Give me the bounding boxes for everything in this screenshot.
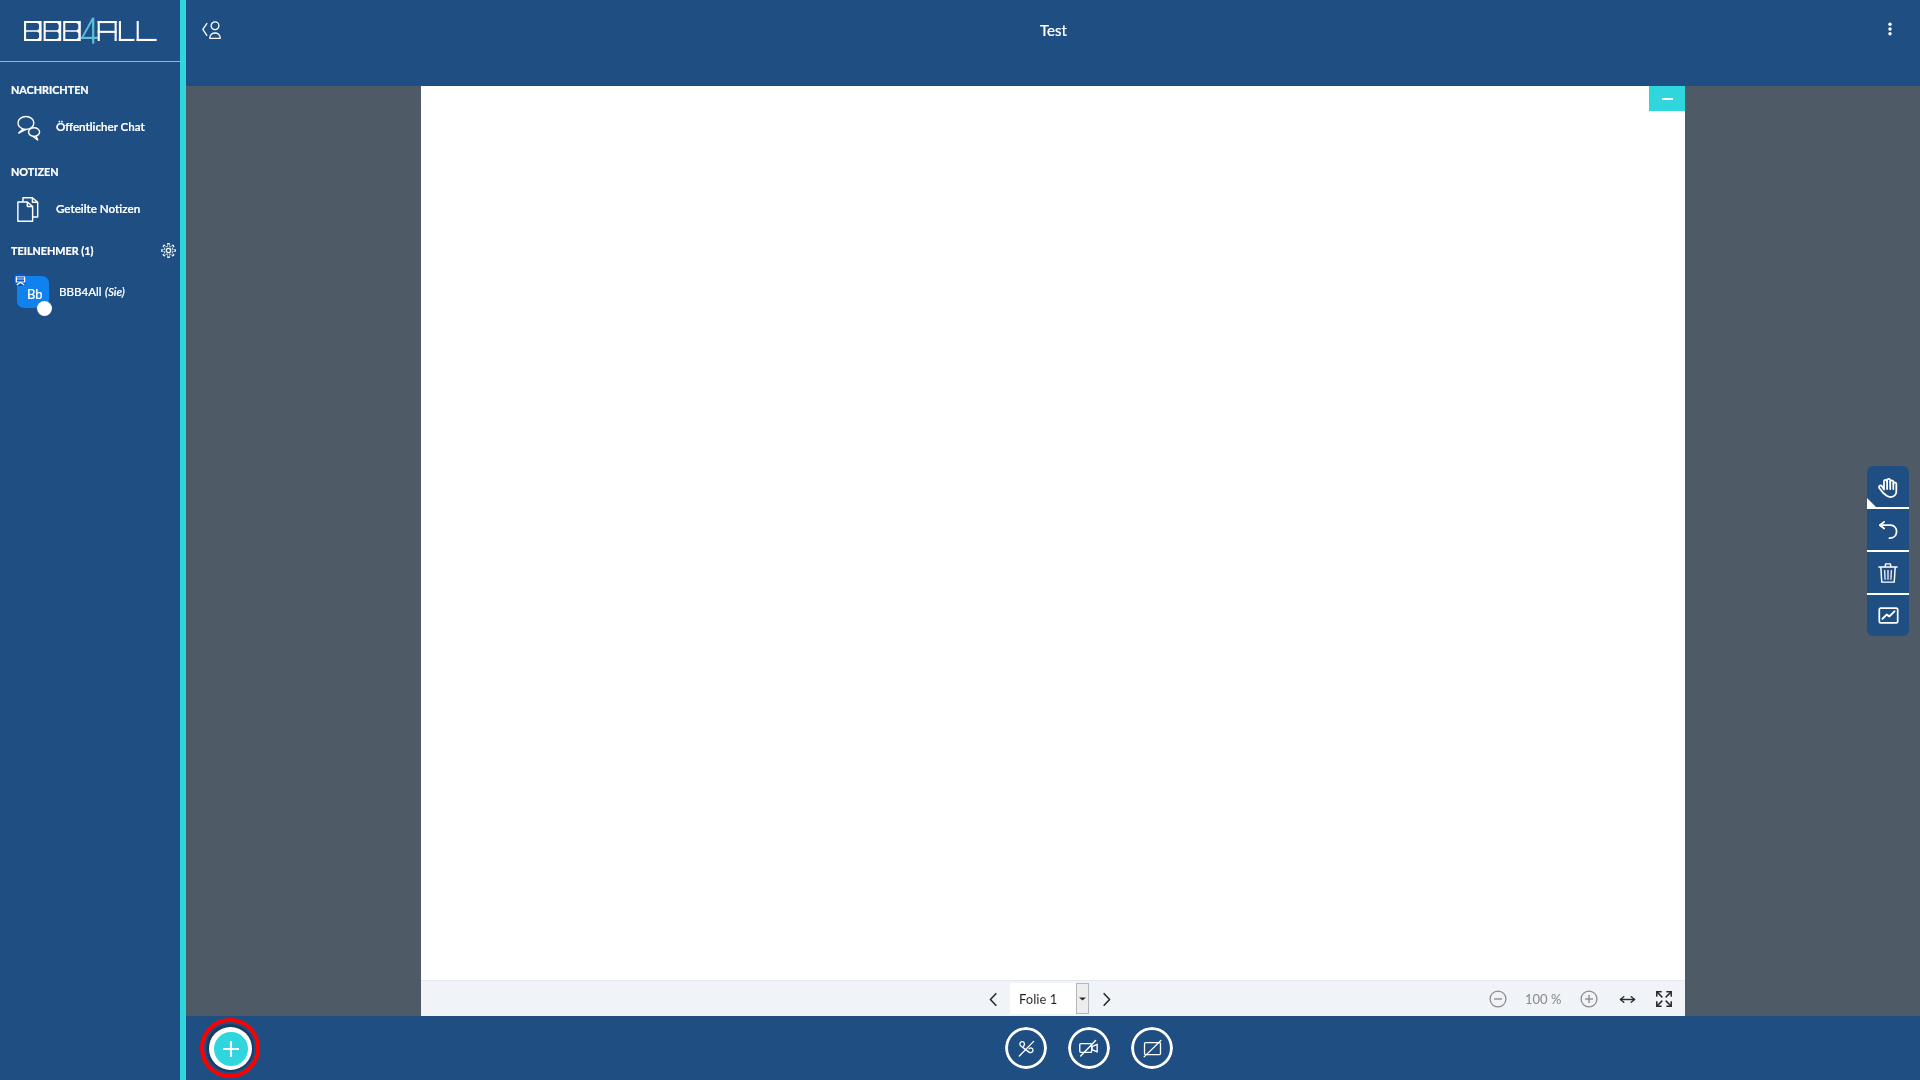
button[interactable]: Verkleinern (1484, 985, 1512, 1013)
staticText: (Sie) (105, 285, 125, 299)
button[interactable]: Aktionen (214, 1032, 248, 1066)
button[interactable]: Bildschirm freigeben (1131, 1027, 1173, 1069)
button[interactable]: Rückgängig (1867, 509, 1909, 550)
button[interactable]: Vorherige Folie (979, 985, 1007, 1013)
button[interactable]: Nächste Folie (1092, 985, 1120, 1013)
button[interactable]: An Breite anpassen (1614, 986, 1640, 1012)
staticText: TEILNEHMER (1) (11, 244, 94, 257)
button[interactable]: Verschieben (1867, 466, 1909, 507)
button[interactable]: Vergrößern (1575, 985, 1603, 1013)
button[interactable]: Folie 1 (1010, 983, 1089, 1014)
button[interactable]: Kamera freigeben (1068, 1027, 1110, 1069)
button[interactable]: Teilnehmerliste ausblenden (194, 12, 230, 48)
button[interactable]: Mehrbenutzermodus (1867, 595, 1909, 636)
button[interactable]: Geteilte Notizen (0, 191, 180, 227)
staticText: Geteilte Notizen (56, 202, 141, 216)
staticText: Folie 1 (1019, 991, 1058, 1007)
button[interactable]: Einstellungen (159, 242, 177, 259)
staticText: NOTIZEN (11, 165, 59, 178)
staticText: BBB4All (59, 285, 105, 299)
staticText: 100 % (1525, 991, 1562, 1007)
button[interactable]: Löschen (1867, 552, 1909, 593)
staticText: NACHRICHTEN (11, 83, 89, 96)
button[interactable]: Vollbild (1651, 986, 1677, 1012)
button[interactable]: Mikrofon einschalten (1005, 1027, 1047, 1069)
button[interactable]: Optionen (1873, 12, 1907, 46)
staticText: Öffentlicher Chat (56, 120, 145, 134)
button[interactable]: Öffentlicher Chat (0, 109, 180, 145)
button[interactable]: Minimieren (1649, 86, 1685, 111)
staticText: Bb (27, 286, 43, 302)
staticText: Test (1040, 21, 1067, 39)
button[interactable]: Bb (0, 271, 180, 313)
